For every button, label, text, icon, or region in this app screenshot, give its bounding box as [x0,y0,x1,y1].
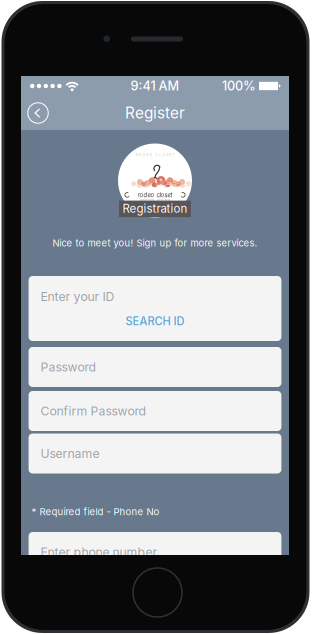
staticText: BOUTIQUE ATELIER [140,199,170,203]
staticText: Confirm Password [40,404,146,418]
button[interactable]: Password [29,347,281,387]
staticText: Enter phone number [40,545,157,559]
staticText: Password [40,360,96,374]
staticText: Enter your ID [40,289,114,304]
staticText: 100% [222,78,256,94]
button[interactable]: Enter phone number [29,532,281,572]
staticText: Register [125,104,185,122]
button[interactable]: Username [29,433,281,473]
staticText: Registration [122,202,187,215]
staticText: R O D E O C L O S E T [135,153,174,157]
button[interactable]: Enter your ID [29,276,281,341]
staticText: SEARCH ID [125,314,184,328]
staticText: * Required field - Phone No [32,506,160,518]
staticText: rodeo closet [137,192,172,199]
staticText: 9:41 AM [130,78,179,94]
staticText: Nice to meet you! Sign up for more servi… [52,237,257,249]
button[interactable]: Confirm Password [29,391,281,431]
button[interactable]: Back [21,96,55,130]
staticText: Username [40,446,99,461]
